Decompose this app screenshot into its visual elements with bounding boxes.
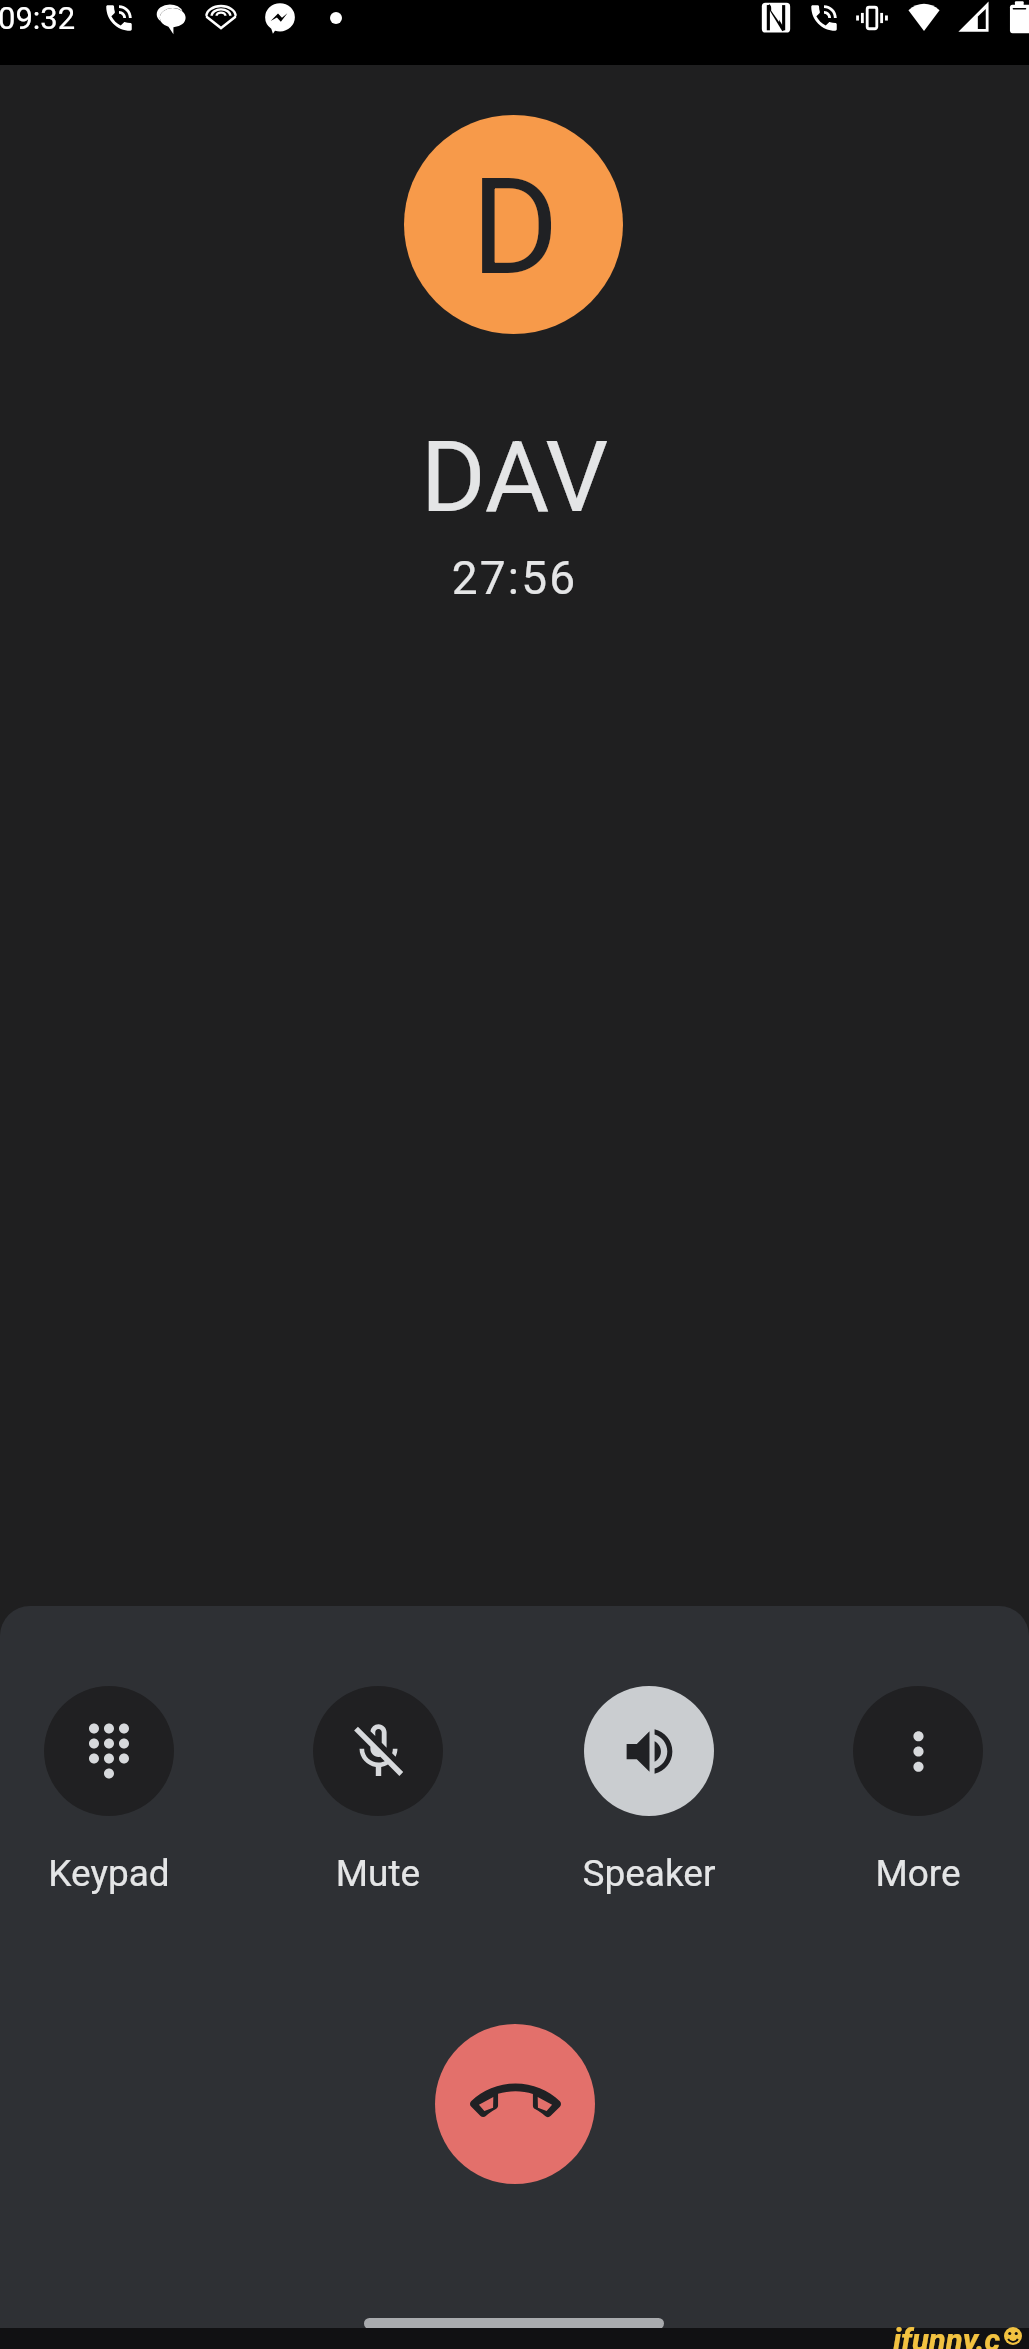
staticText: Mute: [303, 1852, 453, 1895]
staticText: Speaker: [574, 1852, 724, 1895]
staticText: More: [843, 1852, 993, 1895]
button[interactable]: Mute: [303, 1672, 453, 1867]
button[interactable]: End call: [435, 2024, 595, 2184]
staticText: 27:56: [0, 551, 1029, 605]
staticText: Keypad: [34, 1852, 184, 1895]
staticText: D: [471, 149, 559, 306]
staticText: DAV: [0, 419, 1029, 535]
button[interactable]: More: [843, 1672, 993, 1867]
staticText: 09:32: [0, 0, 76, 36]
staticText: ifunny.c: [893, 2322, 1001, 2349]
button[interactable]: Keypad: [34, 1672, 184, 1867]
button[interactable]: Speaker: [574, 1672, 724, 1867]
